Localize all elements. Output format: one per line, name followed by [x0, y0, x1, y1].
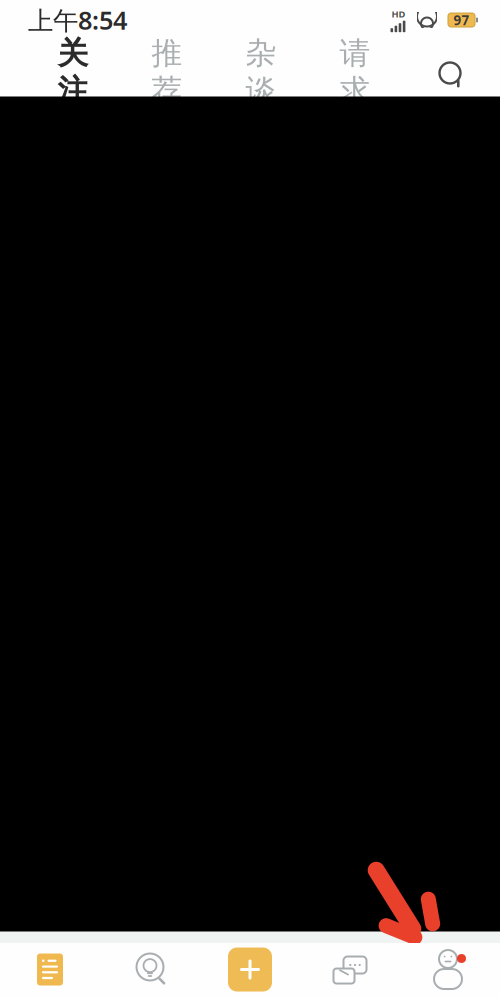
staticText: 推荐	[151, 34, 182, 110]
staticText: HD	[391, 8, 405, 20]
button[interactable]: 文章	[0, 943, 100, 996]
staticText: 97	[453, 11, 469, 29]
button[interactable]: 消息	[300, 943, 400, 996]
button[interactable]: 请求	[326, 52, 384, 96]
staticText: 上午8:54	[28, 3, 127, 37]
button[interactable]: 推荐	[138, 52, 196, 96]
staticText: 请求	[339, 34, 370, 110]
button[interactable]: 搜索	[424, 49, 474, 99]
button[interactable]: 发布	[200, 943, 300, 996]
button[interactable]: 杂谈	[232, 52, 290, 96]
button[interactable]: 发现	[100, 943, 200, 996]
button[interactable]: 关注	[44, 52, 102, 96]
staticText: 杂谈	[245, 34, 276, 110]
staticText: 关注	[57, 34, 88, 110]
button[interactable]: 我的	[400, 943, 500, 996]
